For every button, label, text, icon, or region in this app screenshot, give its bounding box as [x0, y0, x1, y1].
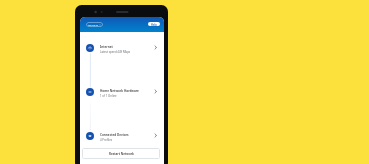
other: Home Network Hardware — [153, 89, 158, 94]
button[interactable]: My Wi-Fi — [86, 22, 103, 27]
button[interactable]: Restart Network — [82, 148, 160, 159]
staticText: Restart Network — [109, 152, 134, 156]
staticText: Internet — [100, 45, 113, 49]
other: Internet — [153, 45, 158, 50]
button[interactable]: Help — [148, 22, 160, 26]
staticText: 4 Profiles — [100, 138, 113, 142]
staticText: 1 of 1 Online — [100, 94, 117, 98]
button[interactable]: Home Network Hardware — [80, 85, 164, 99]
staticText: Home Network Hardware — [100, 89, 139, 93]
button[interactable]: Connected Devices — [80, 129, 164, 143]
staticText: Help — [151, 23, 157, 26]
button[interactable]: Internet — [80, 41, 164, 55]
staticText: Connected Devices — [100, 133, 129, 137]
staticText: My Wi-Fi — [88, 23, 98, 26]
other: Connected Devices — [153, 133, 158, 138]
staticText: Latest speed 449 Mbps — [100, 50, 131, 54]
